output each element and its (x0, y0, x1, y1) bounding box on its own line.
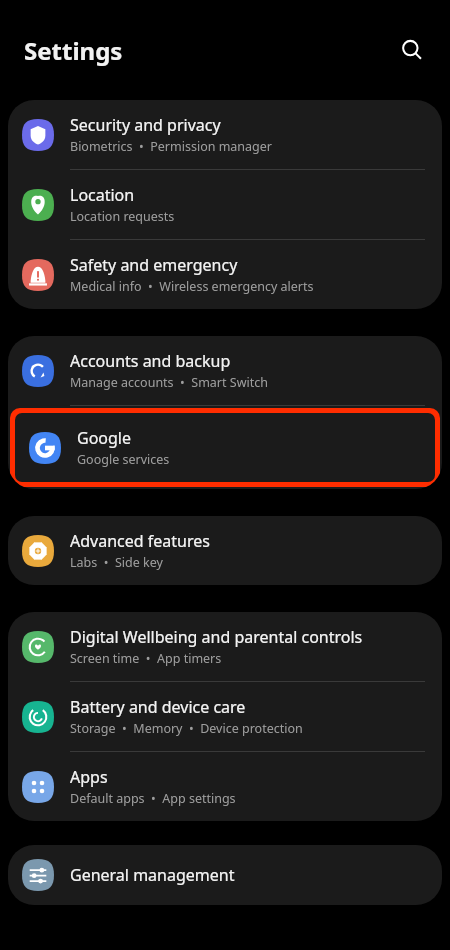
staticText: Storage • Memory • Device protection (70, 720, 303, 737)
staticText: Biometrics • Permission manager (70, 138, 273, 155)
staticText: Accounts and backup (70, 350, 231, 372)
button[interactable]: Safety and emergency (8, 240, 442, 309)
staticText: Battery and device care (70, 696, 246, 718)
staticText: Location requests (70, 208, 175, 225)
button[interactable]: Location (8, 170, 442, 239)
button[interactable]: Battery and device care (8, 682, 442, 751)
staticText: Settings (24, 34, 123, 67)
button[interactable]: Apps (8, 752, 442, 821)
button[interactable]: Digital Wellbeing and parental controls (8, 612, 442, 681)
button[interactable]: Security and privacy (8, 100, 442, 169)
staticText: Location (70, 184, 135, 206)
button[interactable]: Search (392, 30, 432, 70)
staticText: Apps (70, 766, 108, 788)
button[interactable]: Advanced features (8, 516, 442, 585)
staticText: Security and privacy (70, 114, 221, 136)
staticText: Default apps • App settings (70, 790, 236, 807)
staticText: General management (70, 864, 235, 886)
staticText: Screen time • App timers (70, 650, 222, 667)
button[interactable]: Accounts and backup (8, 336, 442, 405)
staticText: Google (77, 427, 132, 449)
button[interactable]: General management (8, 845, 442, 905)
staticText: Advanced features (70, 530, 210, 552)
staticText: Labs • Side key (70, 554, 163, 571)
staticText: Safety and emergency (70, 254, 238, 276)
staticText: Digital Wellbeing and parental controls (70, 626, 363, 648)
button[interactable]: Google (15, 413, 435, 482)
staticText: Google services (77, 451, 170, 468)
staticText: Manage accounts • Smart Switch (70, 374, 268, 391)
staticText: Medical info • Wireless emergency alerts (70, 278, 314, 295)
